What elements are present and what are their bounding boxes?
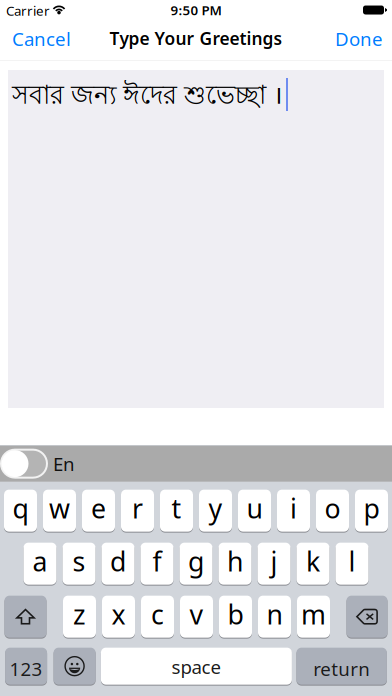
button[interactable]: f (140, 543, 173, 585)
staticText: e (91, 490, 106, 526)
staticText: d (110, 543, 126, 579)
button[interactable]: r (121, 490, 154, 532)
button[interactable]: Shift (4, 596, 46, 638)
staticText: 9:50 PM (170, 1, 221, 19)
staticText: w (49, 490, 70, 526)
button[interactable]: m (297, 596, 330, 638)
staticText: i (290, 490, 297, 526)
button[interactable]: a (23, 543, 56, 585)
staticText: f (152, 543, 161, 579)
button[interactable]: Return (296, 648, 387, 685)
staticText: o (324, 490, 340, 526)
button[interactable]: space (101, 648, 292, 685)
button[interactable]: c (141, 596, 174, 638)
staticText: সবার জন্য ঈদের শুভেচ্ছা । (12, 77, 283, 114)
button[interactable]: u (238, 490, 271, 532)
staticText: return (313, 656, 370, 681)
button[interactable]: n (258, 596, 291, 638)
staticText: Carrier (6, 2, 50, 19)
button[interactable]: Done (331, 20, 387, 60)
staticText: space (171, 654, 221, 679)
staticText: a (32, 543, 47, 579)
button[interactable]: d (101, 543, 134, 585)
staticText: h (227, 543, 243, 579)
button[interactable]: i (277, 490, 310, 532)
staticText: z (73, 596, 86, 632)
staticText: x (111, 596, 125, 632)
staticText: Type Your Greetings (109, 27, 282, 50)
button[interactable]: Emoji (54, 648, 96, 685)
button[interactable]: q (4, 490, 37, 532)
button[interactable]: o (316, 490, 349, 532)
button[interactable]: Delete (346, 596, 387, 638)
button[interactable]: b (219, 596, 252, 638)
staticText: Cancel (12, 26, 71, 51)
button[interactable]: সবার জন্য ঈদের শুভেচ্ছা । (8, 70, 384, 408)
staticText: j (270, 543, 277, 579)
staticText: g (188, 543, 204, 579)
button[interactable]: Numbers (5, 648, 47, 685)
staticText: t (171, 490, 181, 526)
button[interactable]: p (355, 490, 388, 532)
staticText: v (189, 596, 203, 632)
button[interactable]: y (199, 490, 232, 532)
staticText: l (348, 543, 355, 579)
button[interactable]: English keyboard toggle (1, 450, 47, 478)
button[interactable]: e (82, 490, 115, 532)
staticText: En (53, 451, 75, 476)
staticText: m (301, 596, 326, 632)
staticText: Done (335, 26, 383, 51)
button[interactable]: Cancel (8, 20, 75, 60)
staticText: 123 (10, 656, 43, 681)
button[interactable]: j (257, 543, 290, 585)
button[interactable]: t (160, 490, 193, 532)
button[interactable]: v (180, 596, 213, 638)
staticText: p (363, 490, 379, 526)
staticText: b (227, 596, 243, 632)
button[interactable]: w (43, 490, 76, 532)
staticText: n (266, 596, 282, 632)
staticText: u (246, 490, 262, 526)
staticText: r (132, 490, 143, 526)
staticText: k (306, 543, 320, 579)
button[interactable]: k (296, 543, 329, 585)
staticText: s (72, 543, 85, 579)
button[interactable]: g (179, 543, 212, 585)
button[interactable]: l (335, 543, 368, 585)
staticText: c (151, 596, 164, 632)
button[interactable]: z (63, 596, 96, 638)
button[interactable]: h (218, 543, 251, 585)
button[interactable]: x (102, 596, 135, 638)
button[interactable]: s (62, 543, 95, 585)
staticText: y (208, 490, 222, 526)
staticText: q (12, 490, 28, 526)
